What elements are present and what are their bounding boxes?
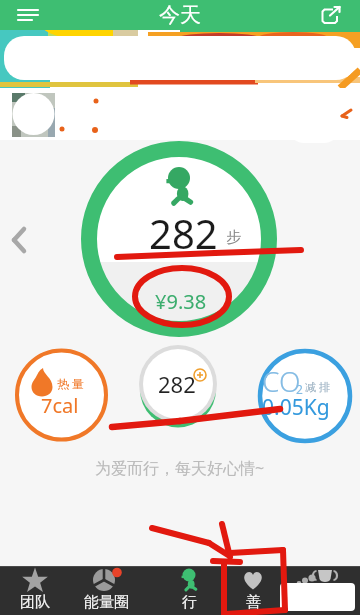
staticText: 赛 [314,593,329,612]
button[interactable] [0,30,360,88]
staticText: 团队 [20,593,50,612]
staticText: 为爱而行，每天好心情~ [95,457,265,479]
staticText: 行 [182,593,197,612]
staticText: 282 [158,369,196,399]
staticText: 2 [296,381,303,397]
button[interactable]: 行 [153,567,225,615]
staticText: 能量圈 [84,593,129,612]
button[interactable]: 赛 [285,567,357,615]
staticText: 今天 [159,2,201,28]
button[interactable] [0,0,56,30]
staticText: 0.05Kg [262,393,330,422]
button[interactable]: 能量圈 [70,567,142,615]
staticText: 步 [226,228,241,247]
staticText: 282 [149,206,218,260]
staticText: CO [262,362,301,400]
button[interactable]: 团队 [0,567,71,615]
staticText: ¥9.38 [155,288,207,315]
staticText: 热 量 [57,375,85,391]
staticText: 7cal [41,392,79,419]
button[interactable]: 善 [217,567,289,615]
staticText: 减 排 [305,379,330,394]
staticText: 善 [246,593,261,612]
button[interactable] [304,0,360,30]
